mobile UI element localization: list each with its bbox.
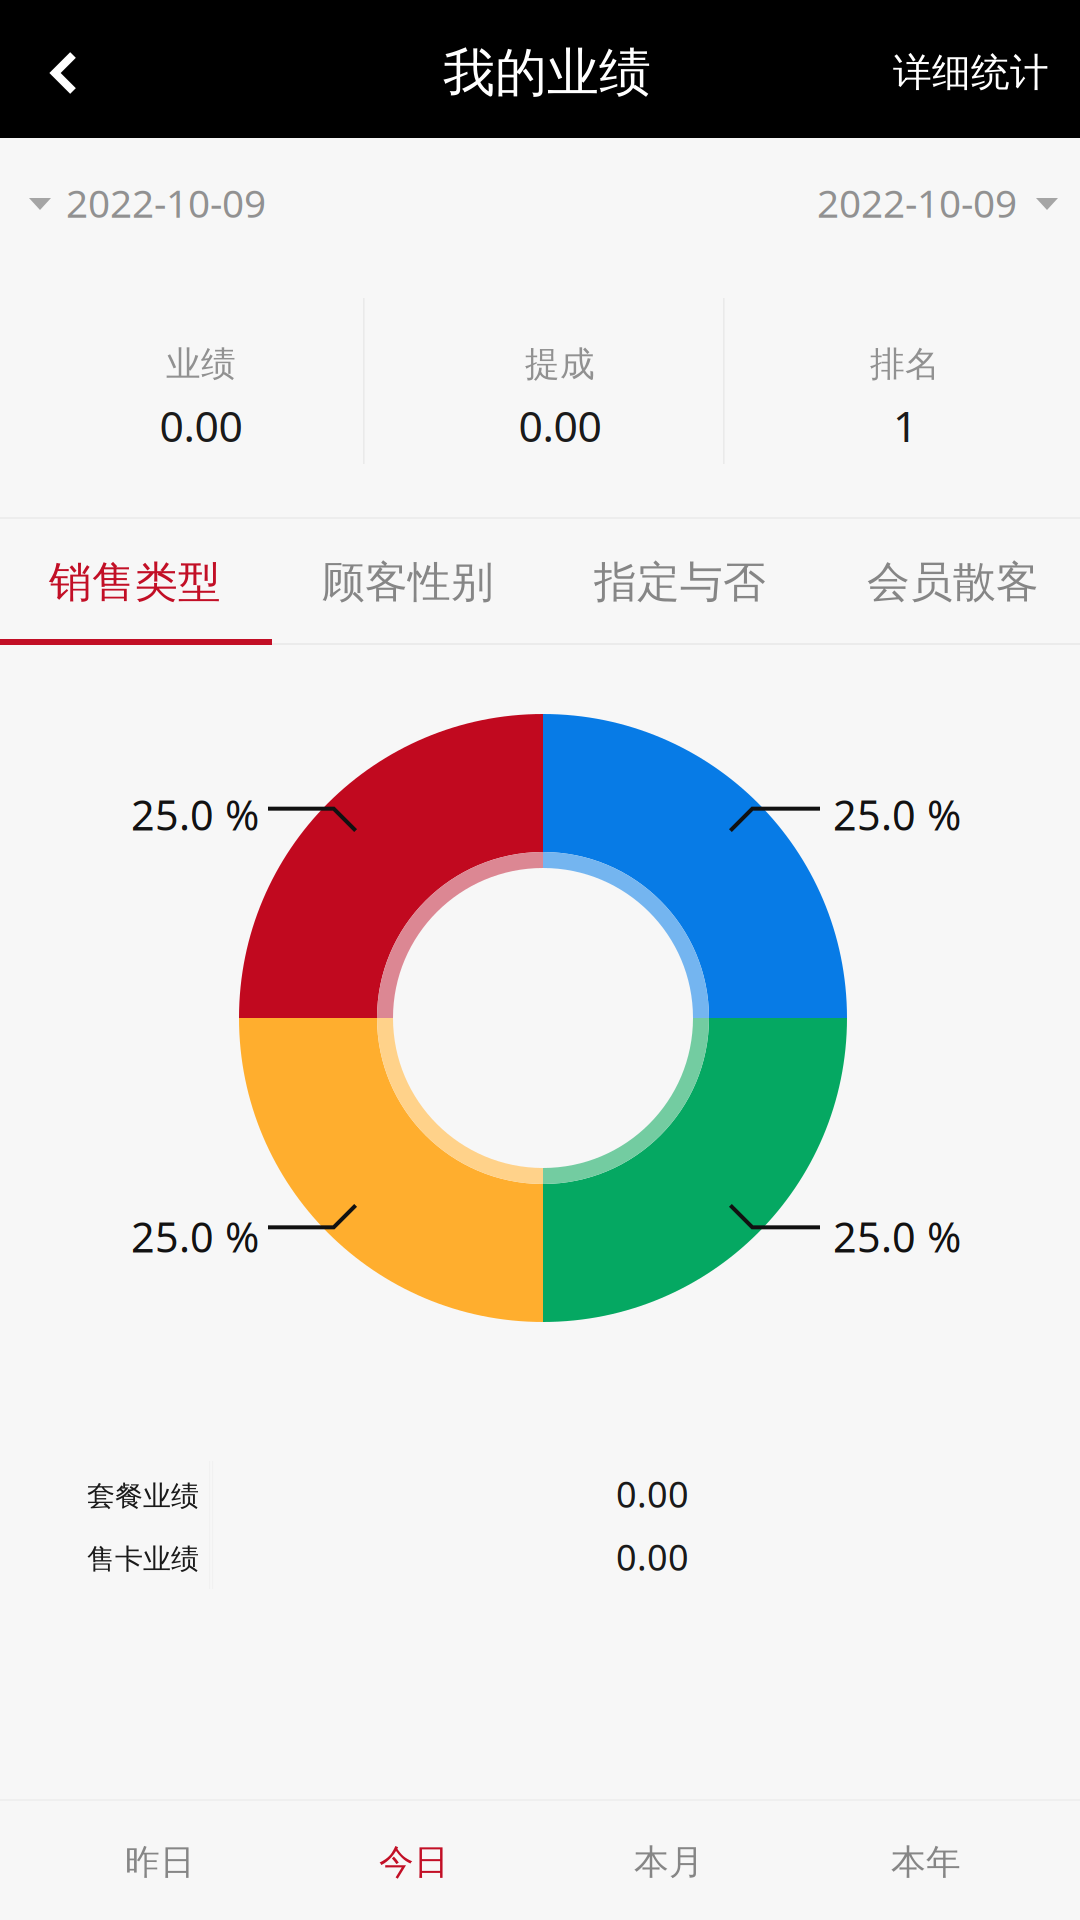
staticText: 套餐业绩 <box>87 1479 199 1513</box>
button[interactable]: 返回 <box>0 0 135 138</box>
button[interactable]: 指定与否 <box>545 519 815 645</box>
staticText: 详细统计 <box>893 49 1049 96</box>
button[interactable]: 会员散客 <box>818 519 1080 645</box>
staticText: 25.0 % <box>131 1209 259 1264</box>
staticText: 0.00 <box>159 397 242 454</box>
staticText: 25.0 % <box>833 1209 961 1264</box>
button[interactable]: 顾客性别 <box>273 519 543 645</box>
staticText: 25.0 % <box>833 787 961 842</box>
staticText: 2022-10-09 <box>817 177 1017 228</box>
staticText: 本月 <box>634 1841 704 1884</box>
staticText: 会员散客 <box>867 556 1039 608</box>
staticText: 今日 <box>379 1841 449 1884</box>
button[interactable]: 2022-10-09 <box>0 138 300 270</box>
button[interactable]: 本年 <box>799 1799 1053 1920</box>
staticText: 提成 <box>525 343 595 386</box>
button[interactable]: 本月 <box>542 1799 796 1920</box>
button[interactable]: 昨日 <box>33 1799 287 1920</box>
staticText: 售卡业绩 <box>87 1542 199 1576</box>
staticText: 本年 <box>891 1841 961 1884</box>
staticText: 1 <box>893 397 917 454</box>
staticText: 业绩 <box>166 343 236 386</box>
staticText: 0.00 <box>518 397 601 454</box>
button[interactable]: 今日 <box>287 1799 541 1920</box>
staticText: 指定与否 <box>594 556 766 608</box>
button[interactable]: 销售类型 <box>0 519 270 645</box>
staticText: 昨日 <box>125 1841 195 1884</box>
staticText: 25.0 % <box>131 787 259 842</box>
staticText: 销售类型 <box>49 556 221 608</box>
staticText: 0.00 <box>616 1533 689 1581</box>
staticText: 0.00 <box>616 1470 689 1518</box>
staticText: 2022-10-09 <box>66 177 266 228</box>
staticText: 顾客性别 <box>322 556 494 608</box>
button[interactable]: 详细统计 <box>865 0 1065 138</box>
staticText: 我的业绩 <box>443 41 651 105</box>
button[interactable]: 2022-10-09 <box>790 138 1080 270</box>
staticText: 排名 <box>870 343 940 386</box>
